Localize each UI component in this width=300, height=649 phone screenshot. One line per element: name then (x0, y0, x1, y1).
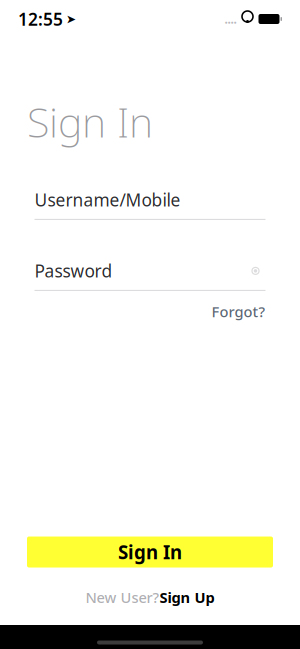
staticText: ➤ (66, 12, 76, 26)
staticText: Sign In (27, 94, 153, 149)
staticText: Forgot? (211, 302, 265, 321)
staticText: Password (34, 259, 112, 282)
button[interactable]: New User? (85, 587, 214, 607)
staticText: 12:55 (18, 7, 63, 30)
button[interactable]: Forgot? (211, 302, 265, 321)
staticText: .... (224, 11, 236, 27)
staticText: Sign Up (159, 587, 214, 607)
button[interactable]: Show password (245, 263, 265, 279)
staticText: Sign In (118, 540, 182, 564)
button[interactable]: Sign In (27, 536, 273, 567)
staticText: New User? (85, 587, 159, 607)
staticText: Username/Mobile (34, 188, 180, 211)
